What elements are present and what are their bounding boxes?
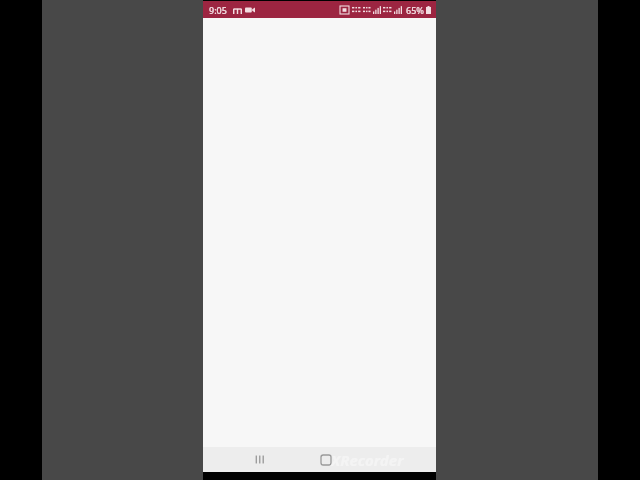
staticText: 65% [406,4,424,16]
button[interactable]: Home [313,447,339,472]
staticText: XRecorder [331,450,404,470]
button[interactable]: Recents [247,447,273,472]
staticText: 9:05 [209,4,227,16]
